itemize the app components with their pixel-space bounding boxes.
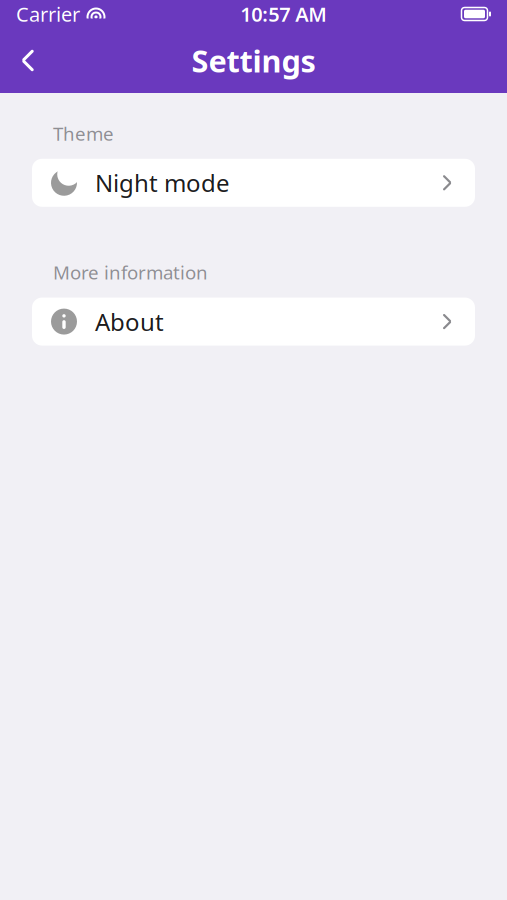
button[interactable]: Back [6, 38, 50, 82]
staticText: Theme [53, 121, 114, 146]
button[interactable]: Night mode [32, 159, 475, 207]
staticText: 10:57 AM [240, 1, 327, 27]
staticText: More information [53, 260, 208, 285]
staticText: About [95, 306, 164, 337]
staticText: Settings [191, 40, 315, 81]
staticText: Night mode [95, 167, 230, 199]
button[interactable]: About [32, 298, 475, 346]
staticText: Carrier [16, 1, 80, 27]
